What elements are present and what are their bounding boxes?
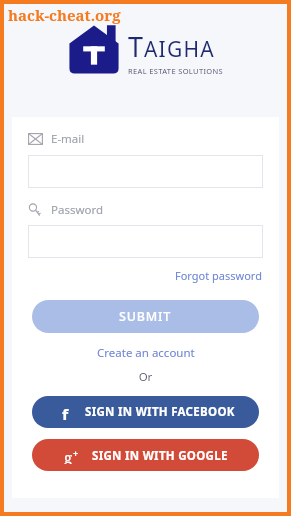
staticText: SIGN IN WITH FACEBOOK — [85, 404, 235, 420]
button[interactable] — [28, 155, 263, 188]
staticText: g — [64, 447, 73, 464]
staticText: + — [73, 447, 79, 459]
other: Facebook — [57, 404, 73, 420]
button[interactable] — [28, 225, 263, 258]
button[interactable]: SUBMIT — [32, 300, 259, 333]
button[interactable]: Facebook — [32, 396, 259, 428]
staticText: SIGN IN WITH GOOGLE — [92, 448, 228, 464]
staticText: hack-cheat.org — [8, 5, 121, 25]
button[interactable]: Google — [32, 439, 259, 471]
staticText: E-mail — [51, 131, 85, 147]
other: Taigha logo — [67, 22, 121, 76]
staticText: f — [62, 404, 69, 420]
staticText: SUBMIT — [119, 308, 172, 325]
button[interactable]: Forgot password — [174, 267, 263, 284]
staticText: Password — [51, 202, 104, 218]
staticText: AIGHA — [144, 35, 215, 64]
staticText: REAL ESTATE SOLUTIONS — [128, 66, 224, 76]
button[interactable]: Create an account — [95, 344, 197, 362]
staticText: T — [128, 28, 144, 65]
staticText: Or — [28, 369, 263, 385]
other: Google — [63, 447, 80, 464]
